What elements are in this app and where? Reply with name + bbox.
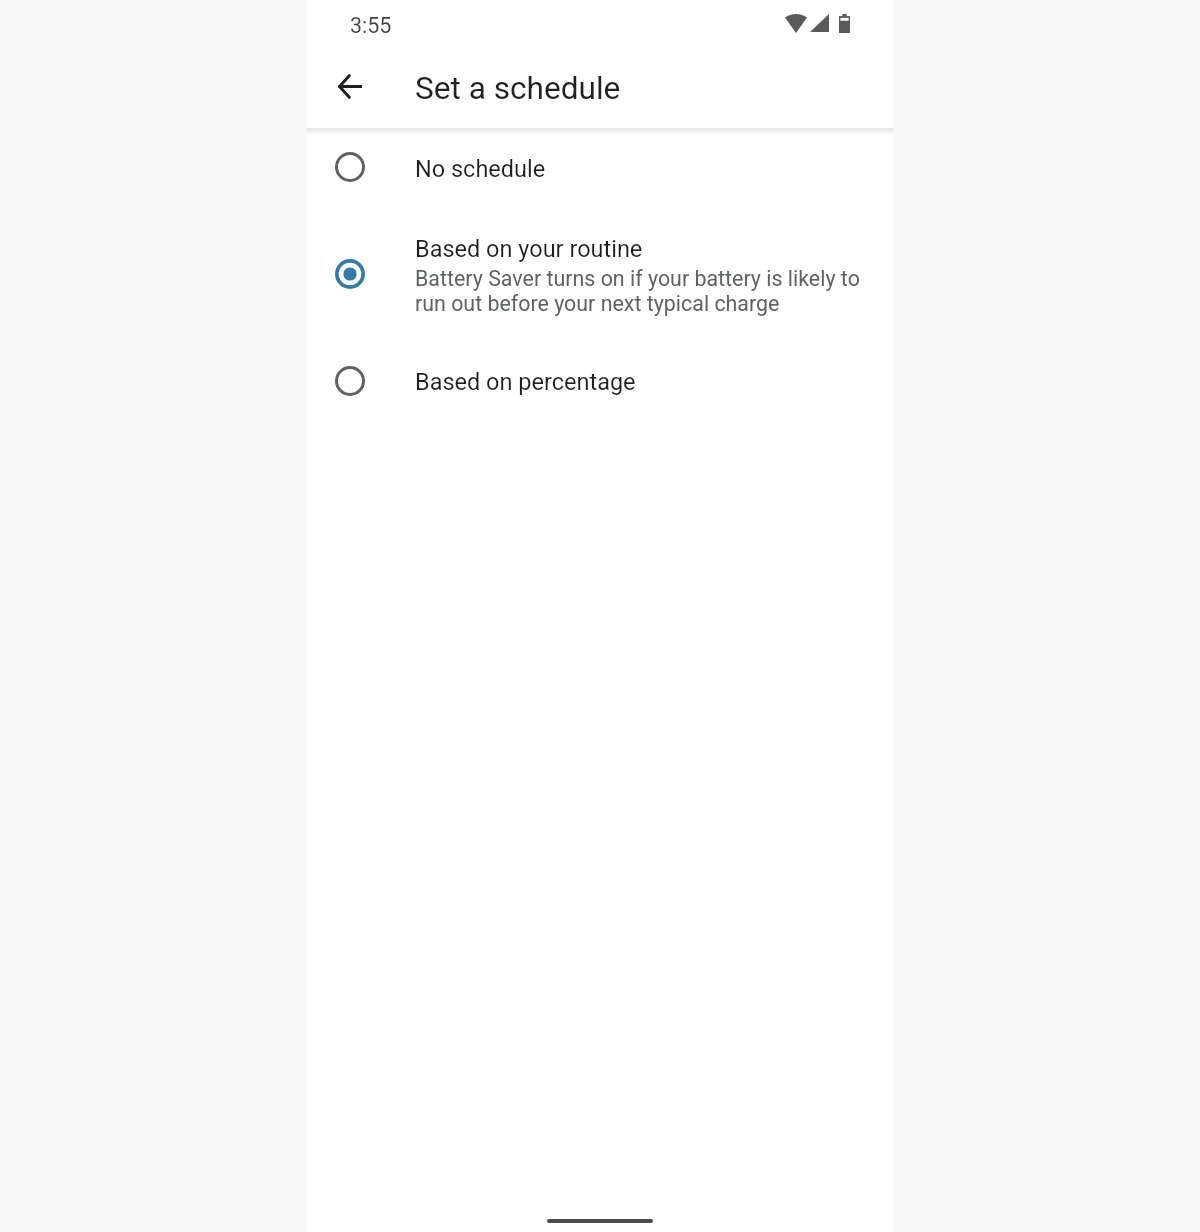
- staticText: 3:55: [350, 13, 392, 38]
- staticText: Based on your routine: [415, 234, 643, 263]
- staticText: No schedule: [415, 154, 546, 183]
- staticText: Battery Saver turns on if your battery i…: [415, 266, 860, 316]
- staticText: Set a schedule: [415, 70, 621, 107]
- button[interactable]: No schedule: [307, 114, 893, 220]
- staticText: Based on percentage: [415, 367, 636, 396]
- button[interactable]: Back: [326, 62, 374, 110]
- button[interactable]: Based on your routine: [307, 221, 893, 327]
- button[interactable]: Based on percentage: [307, 328, 893, 434]
